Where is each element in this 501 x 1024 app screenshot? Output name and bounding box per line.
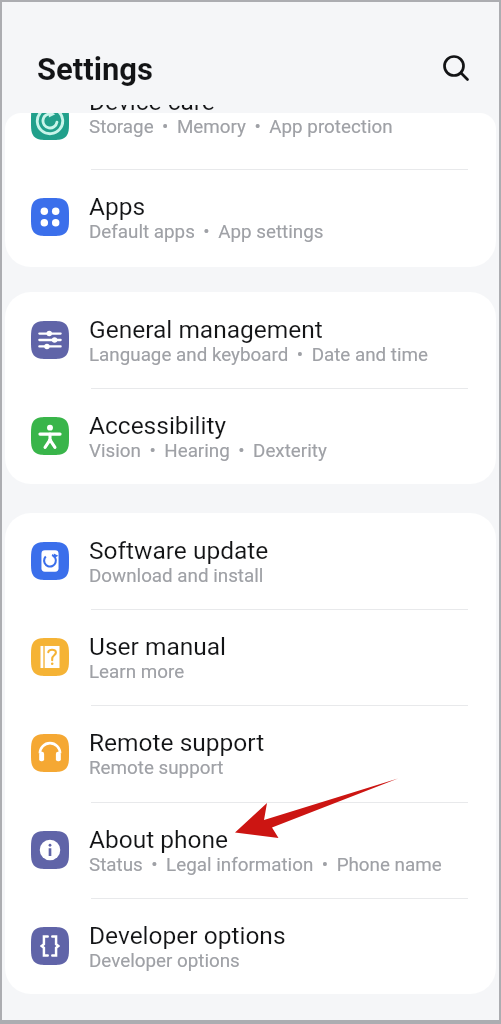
button[interactable]: General management <box>5 292 496 388</box>
button[interactable]: Device care <box>2 105 499 171</box>
staticText: Apps <box>89 192 146 221</box>
staticText: User manual <box>89 632 227 661</box>
staticText: Learn more <box>89 661 185 683</box>
button[interactable]: About phone <box>5 802 496 898</box>
staticText: Remote support <box>89 757 224 779</box>
button[interactable]: User manual <box>5 609 496 705</box>
staticText: Accessibility <box>89 411 227 440</box>
staticText: Vision • Hearing • Dexterity <box>89 440 327 462</box>
staticText: Developer options <box>89 950 240 972</box>
staticText: Remote support <box>89 728 265 757</box>
staticText: Status • Legal information • Phone name <box>89 854 442 876</box>
staticText: Download and install <box>89 565 264 587</box>
button[interactable]: Remote support <box>5 705 496 801</box>
staticText: Default apps • App settings <box>89 221 324 243</box>
staticText: Developer options <box>89 921 286 950</box>
staticText: Device care <box>89 105 215 116</box>
button[interactable]: Apps <box>5 169 496 265</box>
staticText: Language and keyboard • Date and time <box>89 344 429 366</box>
staticText: General management <box>89 315 323 344</box>
button[interactable]: Accessibility <box>5 388 496 484</box>
button[interactable]: Software update <box>5 513 496 609</box>
button[interactable]: Developer options <box>5 898 496 994</box>
staticText: Settings <box>37 51 154 87</box>
staticText: Software update <box>89 536 269 565</box>
staticText: Storage • Memory • App protection <box>89 116 393 138</box>
button[interactable]: Search <box>434 47 474 87</box>
staticText: About phone <box>89 825 229 854</box>
